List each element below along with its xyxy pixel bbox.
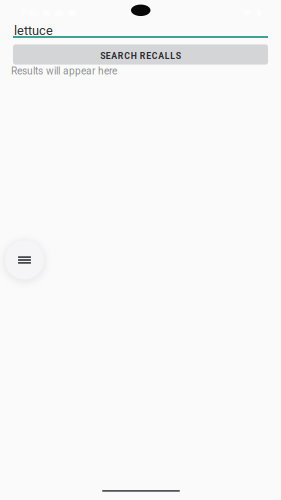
button[interactable]: Open menu	[5, 240, 44, 279]
staticText: Results will appear here	[11, 65, 117, 77]
staticText: lettuce	[14, 23, 53, 38]
staticText: SEARCH RECALLS	[100, 51, 181, 61]
button[interactable]: SEARCH RECALLS	[13, 44, 268, 65]
